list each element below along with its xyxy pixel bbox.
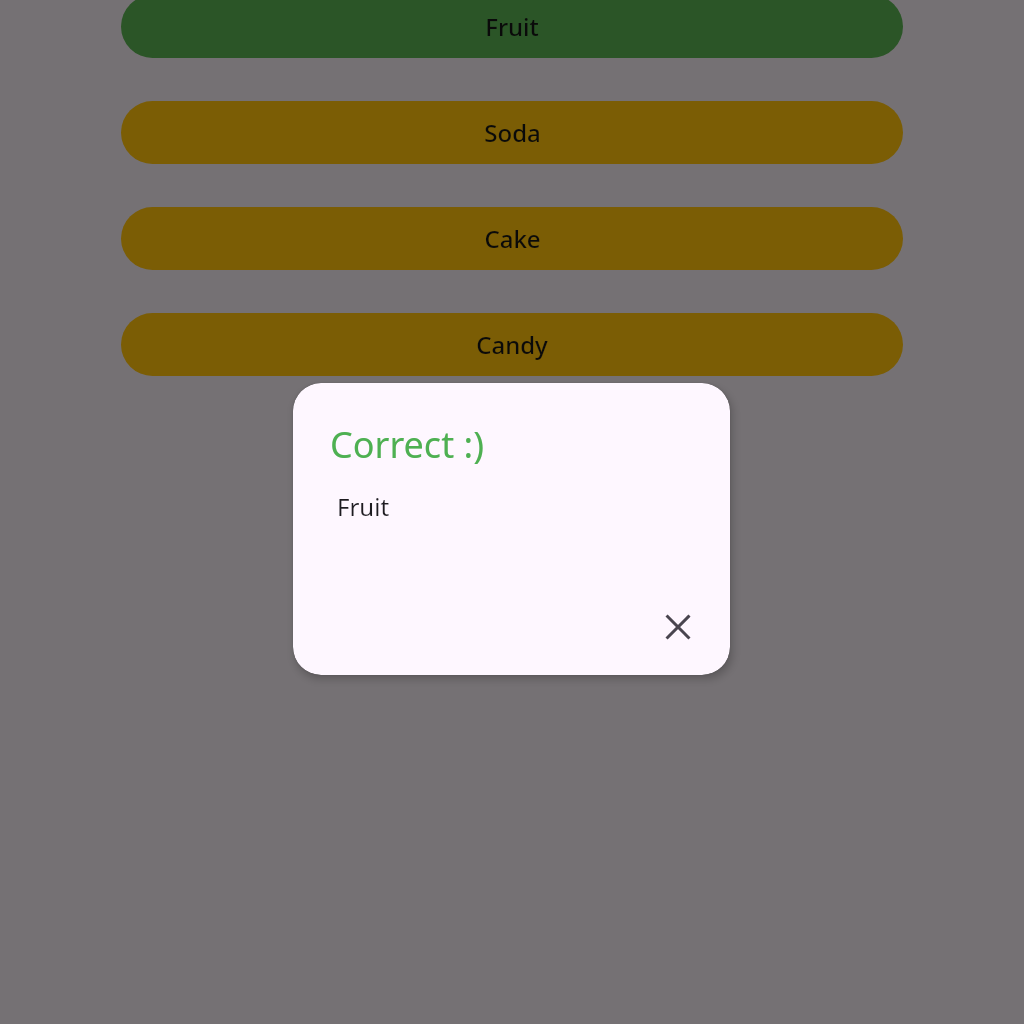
button[interactable]: Soda <box>121 101 903 164</box>
button[interactable]: Fruit <box>121 0 903 58</box>
staticText: Fruit <box>337 490 390 523</box>
staticText: Candy <box>476 328 548 361</box>
staticText: Fruit <box>485 10 539 43</box>
button[interactable]: Cake <box>121 207 903 270</box>
staticText: Soda <box>484 116 541 149</box>
staticText: Cake <box>484 222 541 255</box>
staticText: Correct :) <box>330 420 484 469</box>
button[interactable]: Close <box>654 603 702 651</box>
button[interactable]: Candy <box>121 313 903 376</box>
